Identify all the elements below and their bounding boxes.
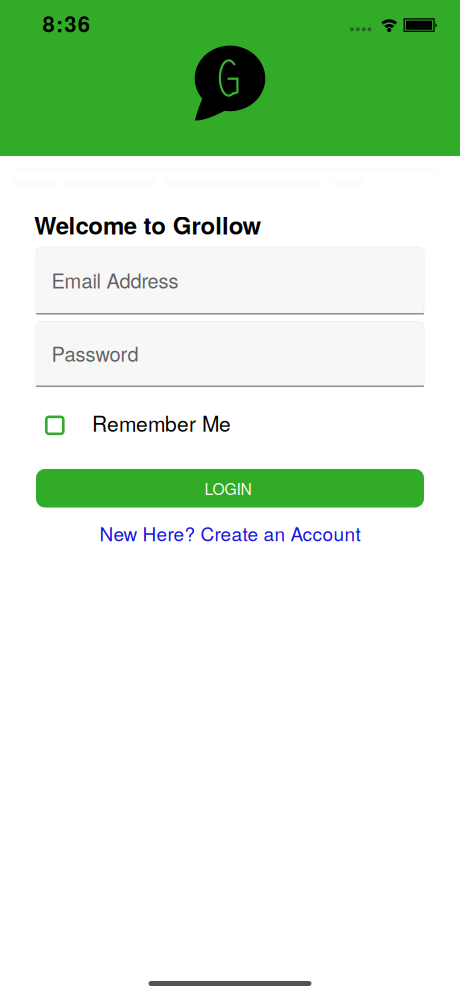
staticText: : [56, 7, 63, 39]
button[interactable]: Remember Me [45, 415, 285, 436]
staticText: New Here? Create an Account [99, 519, 360, 547]
button[interactable]: New Here? Create an Account [0, 519, 460, 547]
staticText: Remember Me [92, 408, 231, 438]
staticText: Welcome to Grollow [34, 207, 262, 242]
staticText: LOGIN [204, 477, 251, 499]
button[interactable]: Password [36, 321, 424, 387]
staticText: 3 [64, 7, 76, 39]
button[interactable]: Email Address [36, 247, 424, 314]
staticText: 8 [42, 7, 54, 39]
staticText: 6 [78, 7, 90, 39]
staticText: Email Address [51, 265, 178, 294]
staticText: Password [51, 339, 138, 367]
button[interactable]: LOGIN [36, 469, 424, 507]
